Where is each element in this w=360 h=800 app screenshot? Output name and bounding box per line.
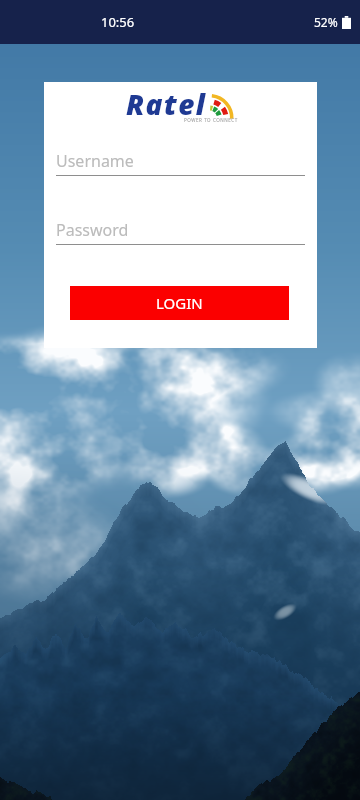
staticText: Password (56, 219, 129, 241)
staticText: 52% (314, 14, 338, 30)
staticText: POWER TO CONNECT (184, 117, 238, 123)
staticText: Username (56, 150, 134, 172)
staticText: 10:56 (101, 13, 135, 31)
button[interactable]: Username (56, 150, 305, 176)
button[interactable]: LOGIN (70, 286, 289, 320)
staticText: Ratel (126, 85, 207, 123)
staticText: LOGIN (156, 293, 203, 313)
button[interactable]: Password (56, 219, 305, 245)
